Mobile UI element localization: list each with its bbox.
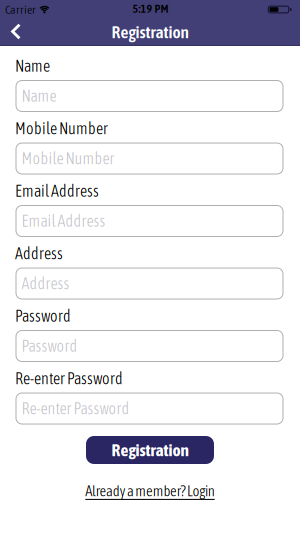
staticText: Password — [21, 337, 77, 355]
staticText: Name — [21, 87, 56, 105]
staticText: Carrier — [5, 3, 36, 16]
staticText: Registration — [111, 440, 188, 460]
button[interactable]: Email Address — [15, 205, 283, 237]
staticText: Mobile Number — [15, 120, 108, 137]
staticText: Email Address — [21, 212, 105, 230]
button[interactable]: Back — [1, 17, 31, 45]
staticText: Registration — [111, 22, 188, 42]
staticText: Password — [15, 307, 71, 325]
staticText: Re-enter Password — [21, 400, 129, 417]
button[interactable]: Name — [15, 80, 283, 112]
staticText: Already a member? Login — [85, 483, 215, 499]
button[interactable]: Already a member? Login — [85, 483, 215, 499]
button[interactable]: Re-enter Password — [15, 392, 283, 424]
staticText: 5:19 PM — [132, 2, 168, 15]
button[interactable]: Address — [15, 267, 283, 299]
button[interactable]: Mobile Number — [15, 142, 283, 174]
button[interactable]: Password — [15, 330, 283, 362]
staticText: Email Address — [15, 182, 99, 200]
staticText: Name — [15, 57, 50, 75]
staticText: Address — [15, 245, 63, 262]
staticText: Address — [21, 275, 69, 292]
button[interactable]: Registration — [86, 436, 214, 464]
staticText: Re-enter Password — [15, 370, 123, 387]
staticText: Mobile Number — [21, 150, 114, 167]
